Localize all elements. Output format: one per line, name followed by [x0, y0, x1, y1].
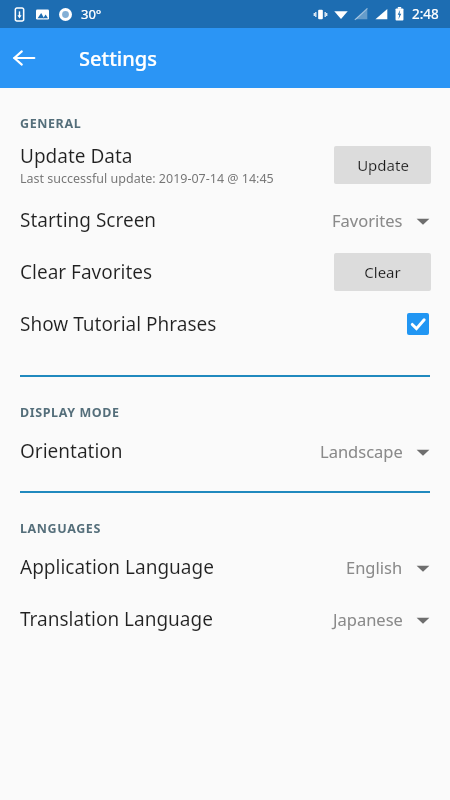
staticText: English — [346, 556, 403, 578]
staticText: GENERAL — [20, 115, 82, 132]
staticText: Update Data — [20, 143, 133, 169]
staticText: LANGUAGES — [20, 520, 101, 537]
staticText: 2:48 — [412, 5, 439, 23]
staticText: Application Language — [20, 554, 346, 580]
staticText: Clear Favorites — [20, 259, 334, 285]
button[interactable]: Update — [334, 146, 431, 184]
other: Open dropdown — [415, 443, 431, 459]
button[interactable]: Orientation — [0, 425, 450, 477]
other: Open dropdown — [415, 611, 431, 627]
staticText: Starting Screen — [20, 207, 332, 233]
button[interactable]: Show tutorial phrases toggle — [405, 311, 431, 337]
button[interactable]: Update Data — [0, 136, 450, 194]
staticText: Japanese — [333, 608, 403, 630]
button[interactable]: Starting Screen — [0, 194, 450, 246]
staticText: Last successful update: 2019-07-14 @ 14:… — [20, 170, 274, 187]
staticText: Clear — [364, 262, 401, 282]
staticText: Update — [357, 155, 409, 175]
staticText: Translation Language — [20, 606, 333, 632]
other: Open dropdown — [415, 559, 431, 575]
staticText: Favorites — [332, 209, 403, 231]
button[interactable]: Translation Language — [0, 593, 450, 645]
staticText: Show Tutorial Phrases — [20, 311, 405, 337]
staticText: Settings — [79, 45, 157, 72]
staticText: 30° — [81, 5, 102, 23]
staticText: DISPLAY MODE — [20, 404, 120, 421]
staticText: Orientation — [20, 438, 320, 464]
button[interactable]: Show Tutorial Phrases — [0, 298, 450, 350]
button[interactable]: Clear Favorites — [0, 246, 450, 298]
button[interactable]: Application Language — [0, 541, 450, 593]
button[interactable]: Back — [0, 34, 48, 82]
button[interactable]: Clear — [334, 253, 431, 291]
other: Open dropdown — [415, 212, 431, 228]
staticText: Landscape — [320, 440, 403, 462]
